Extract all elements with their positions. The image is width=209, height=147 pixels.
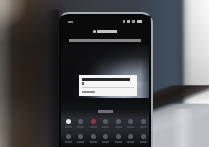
button[interactable]: Item 6 — [137, 132, 149, 143]
button[interactable] — [79, 75, 137, 96]
button[interactable]: Item 2 — [87, 132, 99, 143]
button[interactable]: Item 3 — [99, 117, 111, 128]
button[interactable]: Item 1 — [74, 132, 86, 143]
button[interactable]: Item 0 — [62, 132, 74, 143]
button[interactable]: App title — [61, 27, 149, 35]
button[interactable]: Item 4 — [112, 132, 124, 143]
button[interactable]: Item 0 — [62, 117, 74, 128]
button[interactable]: Item 4 — [112, 117, 124, 128]
button[interactable]: Item 5 — [124, 117, 136, 128]
button[interactable]: Item 1 — [74, 117, 86, 128]
button[interactable]: Item 6 — [137, 117, 149, 128]
button[interactable]: Item 3 — [99, 132, 111, 143]
button[interactable]: Item 5 — [124, 132, 136, 143]
button[interactable]: Item 2 — [87, 117, 99, 128]
